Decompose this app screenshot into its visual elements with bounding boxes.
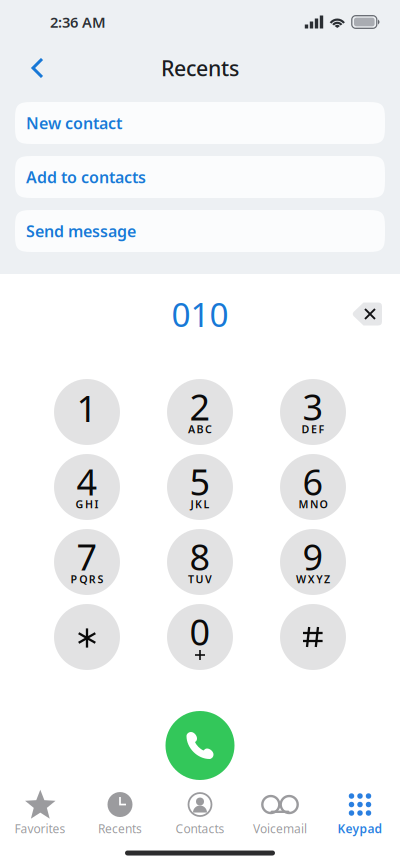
staticText: 010 (171, 292, 228, 336)
staticText: B (196, 422, 203, 436)
staticText: J (190, 497, 193, 511)
button[interactable]: Star (54, 604, 120, 670)
staticText: 0 (189, 608, 210, 655)
button[interactable]: Send message (15, 210, 385, 252)
button[interactable]: Contacts (160, 789, 240, 839)
button[interactable]: Favorites (0, 789, 80, 839)
button[interactable]: Keypad (320, 789, 400, 839)
staticText: 4 (76, 458, 97, 505)
staticText: S (97, 572, 103, 586)
button[interactable]: Recents (80, 789, 160, 839)
button[interactable]: 4 (54, 454, 120, 520)
staticText: Send message (26, 220, 136, 242)
staticText: New contact (26, 112, 122, 134)
staticText: V (205, 572, 212, 586)
button[interactable]: 9 (280, 529, 346, 595)
staticText: 6 (302, 458, 323, 505)
button[interactable]: 2 (167, 379, 233, 445)
staticText: X (308, 572, 315, 586)
staticText: E (311, 422, 317, 436)
button[interactable]: Add to contacts (15, 156, 385, 198)
staticText: Add to contacts (26, 166, 146, 188)
button[interactable]: Pound (280, 604, 346, 670)
staticText: M (298, 497, 308, 511)
staticText: W (296, 572, 306, 586)
staticText: O (320, 497, 328, 511)
staticText: Z (324, 572, 330, 586)
staticText: Voicemail (253, 820, 307, 836)
button[interactable]: Delete (352, 302, 382, 325)
button[interactable]: 0 (167, 604, 233, 670)
staticText: 8 (189, 533, 210, 580)
staticText: P (71, 572, 78, 586)
button[interactable]: 5 (167, 454, 233, 520)
staticText: L (204, 497, 210, 511)
staticText: H (85, 497, 93, 511)
staticText: I (95, 497, 99, 511)
button[interactable]: 1 (54, 379, 120, 445)
staticText: 3 (302, 383, 323, 430)
staticText: Keypad (337, 820, 382, 836)
staticText: T (188, 572, 194, 586)
staticText: 7 (76, 533, 97, 580)
button[interactable]: 8 (167, 529, 233, 595)
staticText: A (188, 422, 195, 436)
button[interactable]: 6 (280, 454, 346, 520)
button[interactable]: Call (165, 711, 234, 780)
staticText: 2:36 AM (50, 12, 106, 32)
staticText: 2 (189, 383, 210, 430)
button[interactable]: 3 (280, 379, 346, 445)
button[interactable]: New contact (15, 102, 385, 144)
staticText: K (195, 497, 202, 511)
staticText: 1 (76, 384, 97, 432)
staticText: N (310, 497, 318, 511)
staticText: 9 (302, 533, 323, 580)
button[interactable]: 7 (54, 529, 120, 595)
staticText: Contacts (175, 820, 224, 836)
button[interactable]: Voicemail (240, 789, 320, 839)
staticText: G (75, 497, 83, 511)
staticText: Favorites (14, 820, 65, 836)
staticText: Recents (161, 54, 239, 82)
staticText: U (195, 572, 203, 586)
staticText: F (319, 422, 325, 436)
staticText: Recents (98, 820, 142, 836)
staticText: R (89, 572, 96, 586)
staticText: D (301, 422, 309, 436)
staticText: Q (79, 572, 87, 586)
staticText: 5 (189, 458, 210, 505)
button[interactable]: Back (17, 47, 59, 88)
staticText: C (205, 422, 212, 436)
staticText: Y (316, 572, 322, 586)
